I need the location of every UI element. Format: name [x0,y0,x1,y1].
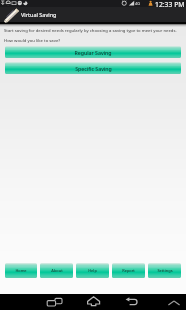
staticText: 4G [135,1,141,6]
staticText: Help [88,268,97,273]
button[interactable]: Recent apps [42,294,64,310]
button[interactable]: Help [76,263,109,278]
staticText: Regular Saving [74,49,112,56]
button[interactable]: Settings [148,263,181,278]
button[interactable]: About [40,263,73,278]
staticText: Start saving for desired needs regularly… [4,28,177,34]
staticText: How would you like to save? [4,38,61,44]
staticText: Settings [157,268,173,273]
button[interactable]: Regular Saving [5,46,181,58]
button[interactable]: Home [83,294,105,310]
button[interactable]: Report [112,263,145,278]
staticText: Virtual Saving [21,11,57,18]
staticText: 12:33 PM [155,0,185,7]
staticText: Report [122,268,135,273]
staticText: Specific Saving [75,65,112,72]
button[interactable]: Specific Saving [5,62,181,74]
button[interactable]: Menu [164,294,184,310]
button[interactable]: Home [5,263,37,278]
staticText: About [51,268,63,273]
button[interactable]: Back [122,294,144,310]
staticText: Home [15,268,27,273]
